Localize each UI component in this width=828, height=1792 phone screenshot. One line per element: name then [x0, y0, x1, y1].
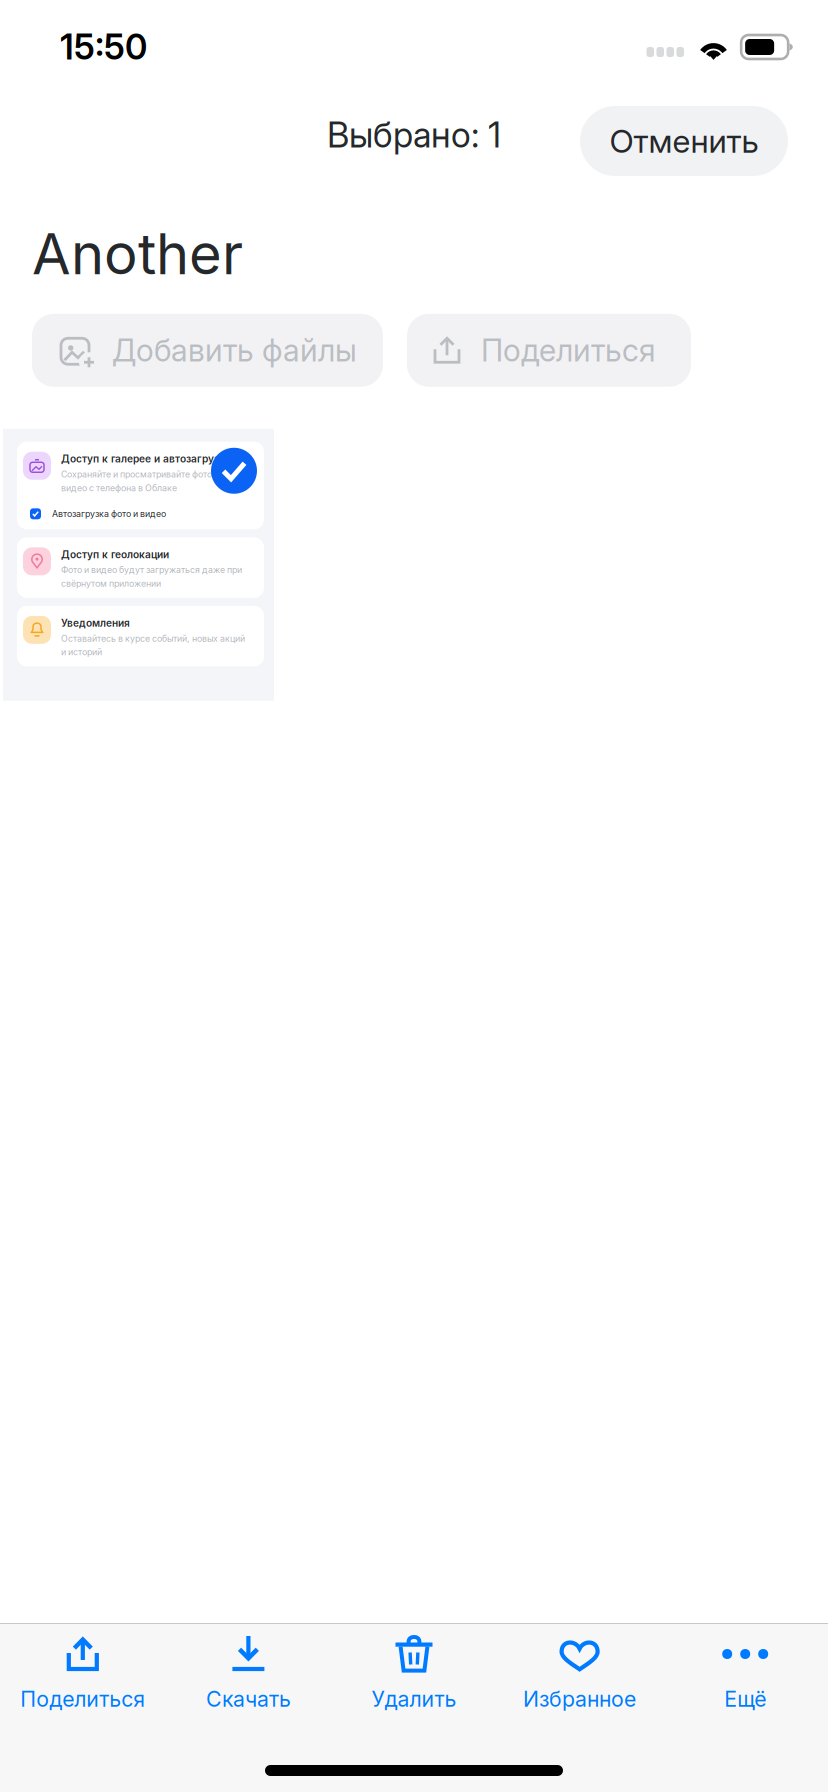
staticText: Избранное [523, 1686, 636, 1712]
staticText: Удалить [371, 1686, 456, 1712]
staticText: 15:50 [60, 26, 147, 68]
staticText: Поделиться [481, 332, 656, 369]
staticText: Поделиться [20, 1686, 145, 1712]
staticText: Another [32, 220, 243, 288]
button[interactable]: Удалить [331, 1624, 497, 1718]
button[interactable]: Ещё [662, 1624, 828, 1718]
staticText: Доступ к галерее и автозагрузка [61, 453, 231, 465]
staticText: Добавить файлы [112, 332, 357, 369]
button[interactable]: Поделиться [407, 314, 691, 387]
button[interactable]: Скачать [166, 1624, 331, 1718]
button[interactable]: Поделиться [0, 1624, 166, 1718]
staticText: Автозагрузка фото и видео [52, 508, 166, 519]
button[interactable]: Скриншот, выбрано [3, 429, 274, 701]
button[interactable]: Избранное [497, 1624, 662, 1718]
staticText: Ещё [724, 1686, 766, 1712]
staticText: Доступ к геолокации [61, 548, 169, 561]
staticText: свёрнутом приложении [61, 578, 161, 589]
staticText: Скачать [206, 1686, 291, 1712]
staticText: Уведомления [61, 617, 130, 629]
button[interactable]: Отменить [580, 106, 788, 176]
staticText: Выбрано: 1 [327, 114, 501, 156]
staticText: Фото и видео будут загружаться даже при [61, 565, 242, 575]
staticText: Оставайтесь в курсе событий, новых акций [61, 633, 245, 644]
staticText: Отменить [609, 122, 758, 160]
staticText: видео с телефона в Облаке [61, 483, 177, 493]
button[interactable]: Добавить файлы [32, 314, 383, 387]
staticText: Сохраняйте и просматривайте фото и [61, 469, 219, 480]
staticText: и историй [61, 647, 102, 657]
